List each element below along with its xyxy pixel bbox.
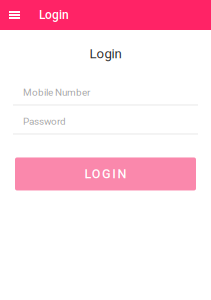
button[interactable]: LOGIN [15, 157, 196, 190]
staticText: Login [89, 46, 121, 61]
staticText: LOGIN [80, 167, 131, 181]
staticText: Mobile Number [23, 86, 90, 98]
button[interactable]: Open navigation menu [6, 0, 23, 30]
button[interactable]: Password [13, 115, 198, 134]
button[interactable]: Mobile Number [13, 86, 198, 105]
staticText: Password [23, 115, 66, 127]
staticText: Login [39, 8, 69, 22]
